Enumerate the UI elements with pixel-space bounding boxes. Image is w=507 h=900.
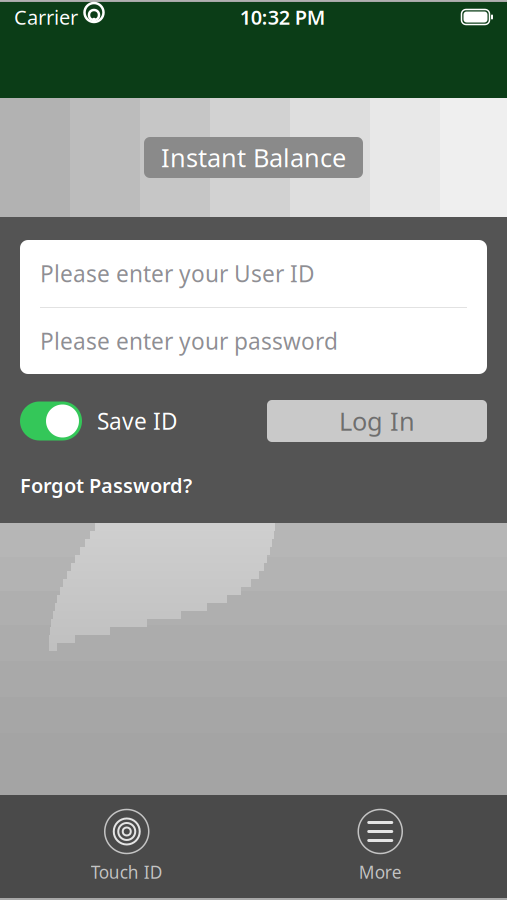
staticText: Instant Balance (161, 141, 346, 174)
staticText: Log In (339, 404, 415, 438)
button[interactable]: Save ID (20, 401, 178, 440)
staticText: Forgot Password? (20, 472, 192, 499)
button[interactable]: Please enter your password (20, 308, 487, 374)
button[interactable]: Instant Balance (144, 137, 363, 178)
button[interactable]: Please enter your User ID (20, 240, 487, 307)
staticText: Carrier (14, 4, 78, 30)
staticText: Touch ID (91, 860, 163, 883)
staticText: Please enter your User ID (40, 258, 315, 288)
staticText: Please enter your password (40, 326, 338, 356)
staticText: 10:32 PM (240, 4, 326, 30)
button[interactable]: Log In (267, 400, 487, 442)
button[interactable]: Forgot Password? (20, 466, 192, 505)
button[interactable]: Touch ID (62, 809, 192, 883)
staticText: More (359, 860, 402, 883)
button[interactable]: More (315, 809, 445, 883)
staticText: Save ID (97, 406, 178, 436)
